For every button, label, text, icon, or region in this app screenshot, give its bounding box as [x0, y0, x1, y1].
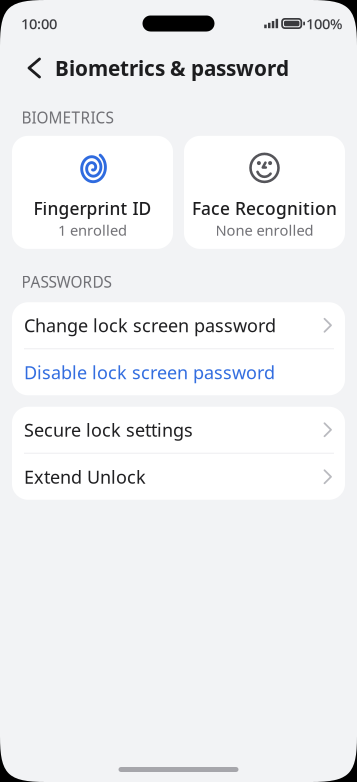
staticText: Disable lock screen password: [24, 360, 275, 384]
staticText: Fingerprint ID: [33, 196, 151, 220]
staticText: Secure lock settings: [24, 417, 193, 442]
staticText: PASSWORDS: [21, 271, 111, 292]
button[interactable]: Disable lock screen password: [12, 349, 345, 395]
button[interactable]: Change lock screen password: [12, 302, 345, 348]
staticText: Change lock screen password: [24, 313, 276, 337]
button[interactable]: Back: [0, 59, 55, 77]
button[interactable]: Extend Unlock: [12, 454, 345, 500]
staticText: 100%: [306, 13, 342, 33]
staticText: 10:00: [21, 13, 57, 33]
button[interactable]: Face Recognition: [184, 136, 345, 249]
staticText: Biometrics & password: [55, 54, 289, 82]
staticText: 1 enrolled: [58, 220, 127, 240]
staticText: None enrolled: [215, 220, 313, 240]
button[interactable]: Secure lock settings: [12, 407, 345, 453]
button[interactable]: Fingerprint ID: [12, 136, 173, 249]
staticText: Face Recognition: [192, 196, 337, 220]
staticText: Extend Unlock: [24, 464, 146, 489]
staticText: BIOMETRICS: [21, 107, 113, 128]
